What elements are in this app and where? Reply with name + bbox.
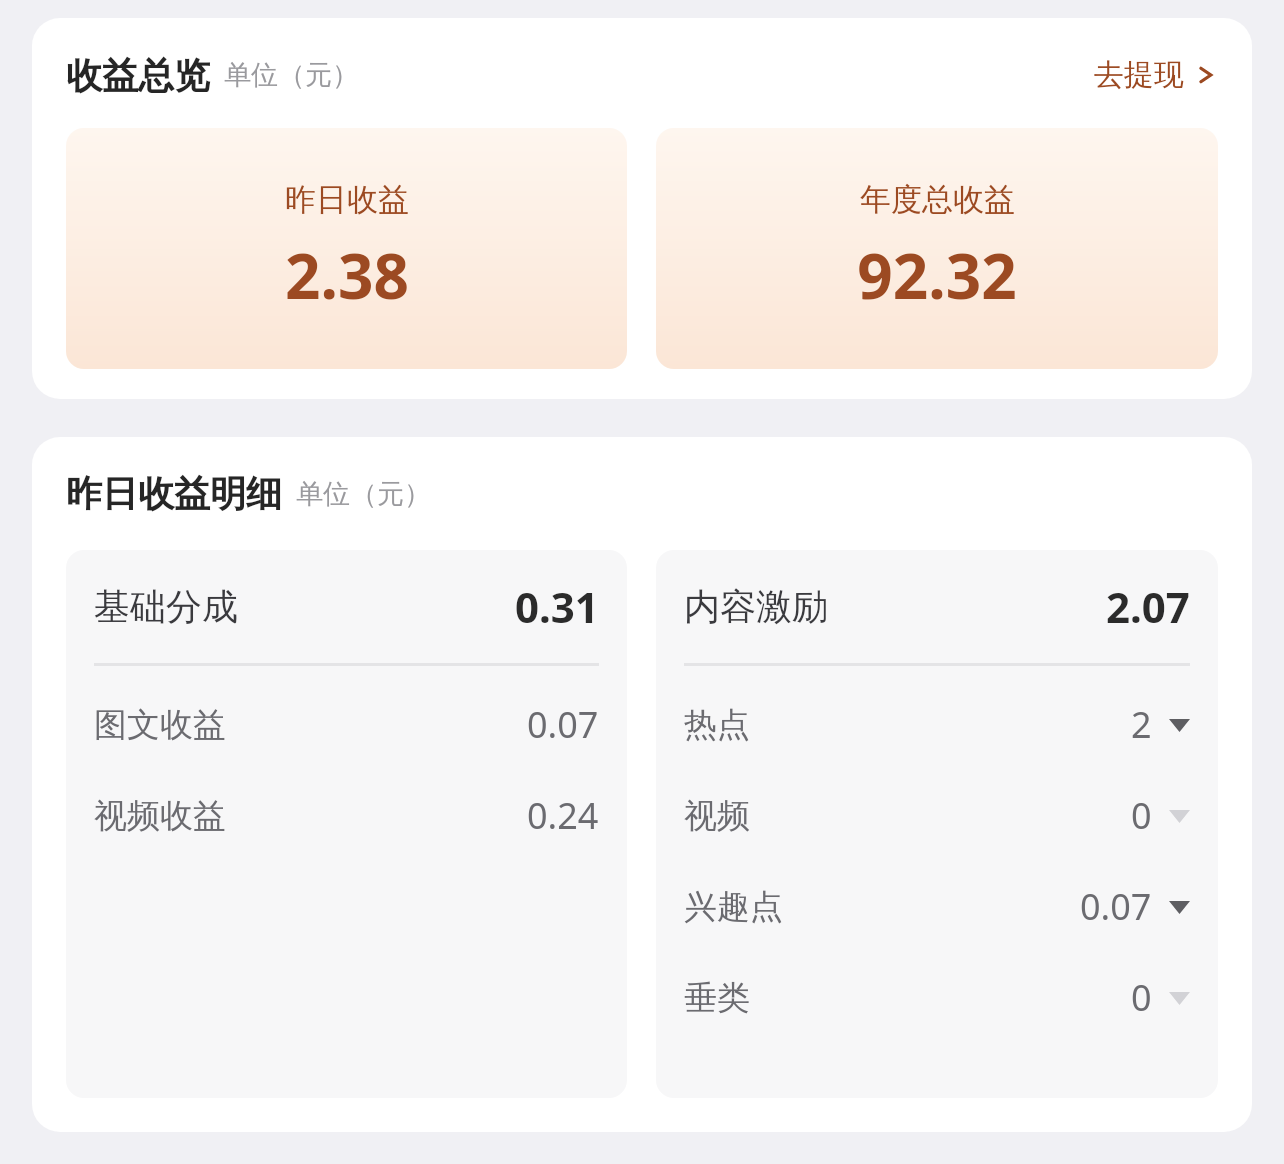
staticText: 单位（元） <box>296 477 431 511</box>
button[interactable]: 图文收益 <box>86 692 607 757</box>
staticText: 2 <box>1131 700 1152 749</box>
button[interactable]: 去提现 <box>1090 50 1218 100</box>
other: Expand 视频 <box>1168 805 1190 827</box>
staticText: 垂类 <box>684 977 750 1019</box>
button[interactable]: 基础分成 <box>66 550 627 1098</box>
staticText: 0 <box>1131 973 1152 1022</box>
staticText: 热点 <box>684 704 750 746</box>
staticText: 去提现 <box>1094 56 1184 94</box>
staticText: 年度总收益 <box>860 180 1015 219</box>
staticText: 收益总览 <box>66 53 210 98</box>
staticText: 图文收益 <box>94 704 226 746</box>
button[interactable]: 热点 <box>676 692 1198 757</box>
staticText: 昨日收益明细 <box>66 471 282 516</box>
staticText: 视频收益 <box>94 795 226 837</box>
other: Expand 热点 <box>1168 714 1190 736</box>
staticText: 视频 <box>684 795 750 837</box>
staticText: 0 <box>1131 791 1152 840</box>
staticText: 0.07 <box>1080 882 1152 931</box>
button[interactable]: 内容激励 <box>656 550 1218 1098</box>
staticText: 92.32 <box>857 233 1017 317</box>
other: Expand 垂类 <box>1168 987 1190 1009</box>
staticText: 0.24 <box>527 791 599 840</box>
staticText: 单位（元） <box>224 58 359 92</box>
staticText: 内容激励 <box>684 584 828 629</box>
staticText: 2.07 <box>1106 578 1190 635</box>
staticText: 基础分成 <box>94 584 238 629</box>
staticText: 2.38 <box>285 233 409 317</box>
staticText: 昨日收益 <box>285 180 409 219</box>
staticText: 0.07 <box>527 700 599 749</box>
staticText: 兴趣点 <box>684 886 783 928</box>
staticText: 0.31 <box>515 578 599 635</box>
button[interactable]: 年度总收益 <box>656 128 1218 369</box>
button[interactable]: 兴趣点 <box>676 874 1198 939</box>
button[interactable]: 视频收益 <box>86 783 607 848</box>
button[interactable]: 垂类 <box>676 965 1198 1030</box>
other: Expand 兴趣点 <box>1168 896 1190 918</box>
button[interactable]: 视频 <box>676 783 1198 848</box>
button[interactable]: 昨日收益 <box>66 128 627 369</box>
